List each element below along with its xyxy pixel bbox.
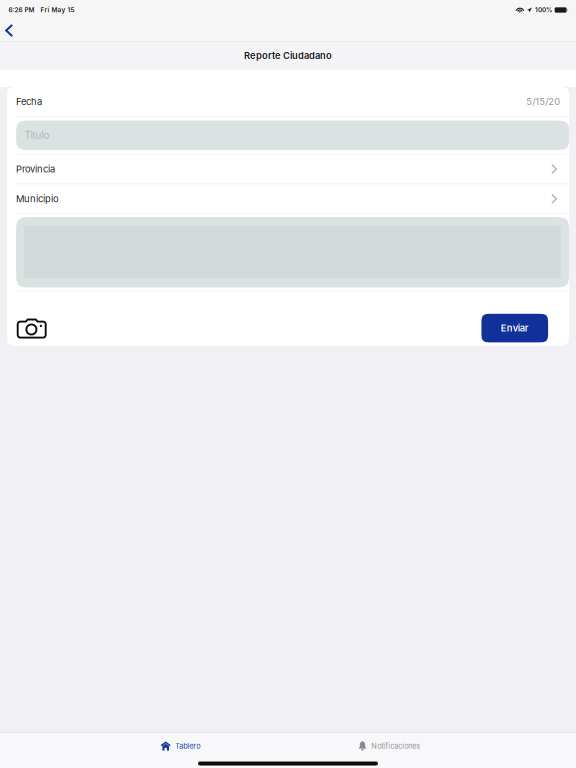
staticText: Notificaciones xyxy=(371,742,420,750)
staticText: Fecha xyxy=(16,96,42,107)
button[interactable]: Tablero xyxy=(152,736,209,756)
button[interactable]: Notificaciones xyxy=(349,736,429,756)
staticText: 6:26 PM xyxy=(8,6,34,14)
staticText: Fri May 15 xyxy=(40,6,74,14)
button[interactable]: Enviar xyxy=(481,314,548,342)
button[interactable]: Atrás xyxy=(0,20,25,41)
button[interactable]: Municipio xyxy=(7,184,569,213)
staticText: Municipio xyxy=(16,193,59,204)
staticText: 100% xyxy=(535,6,552,14)
staticText: Provincia xyxy=(16,163,55,175)
staticText: Tablero xyxy=(175,742,200,750)
staticText: Enviar xyxy=(501,322,529,334)
staticText: Titulo xyxy=(25,129,50,141)
staticText: 5/15/20 xyxy=(526,96,560,107)
staticText: Reporte Ciudadano xyxy=(244,50,332,61)
button[interactable]: Adjuntar foto xyxy=(7,314,52,342)
button[interactable]: Provincia xyxy=(7,155,569,183)
